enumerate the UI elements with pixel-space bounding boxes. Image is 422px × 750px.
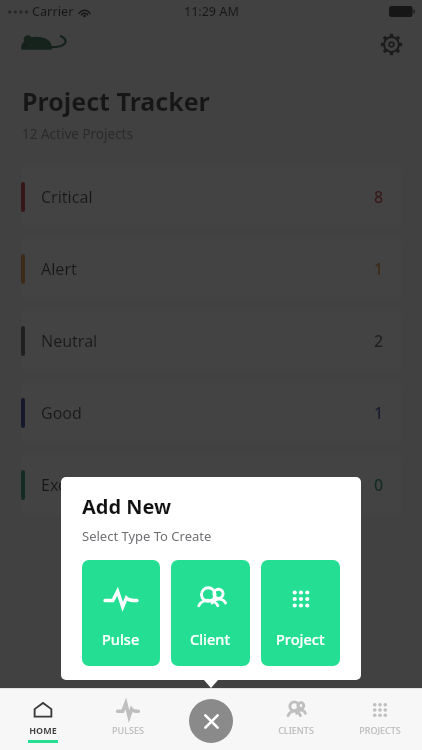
button[interactable]: PROJECTS <box>338 688 422 750</box>
button[interactable]: Alert <box>21 237 401 300</box>
button[interactable]: CLIENTS <box>254 688 338 750</box>
staticText: Project Tracker <box>22 84 210 118</box>
staticText: Critical <box>41 186 93 208</box>
staticText: 0 <box>374 474 384 496</box>
staticText: PROJECTS <box>359 724 401 736</box>
staticText: 2 <box>374 330 384 352</box>
button[interactable]: Good <box>21 381 401 444</box>
button[interactable]: App logo <box>18 31 76 57</box>
button[interactable]: Pulse <box>82 560 160 666</box>
staticText: 12 Active Projects <box>22 125 133 143</box>
staticText: Carrier <box>32 3 74 20</box>
staticText: 11:29 AM <box>184 3 239 20</box>
button[interactable]: Settings <box>374 27 408 61</box>
button[interactable]: HOME <box>0 688 85 750</box>
staticText: Alert <box>41 258 77 280</box>
button[interactable]: PULSES <box>85 688 170 750</box>
button[interactable]: Project <box>261 560 340 666</box>
staticText: CLIENTS <box>278 724 314 736</box>
button[interactable]: Neutral <box>21 309 401 372</box>
staticText: Select Type To Create <box>82 527 212 545</box>
staticText: 1 <box>374 258 384 280</box>
staticText: Project <box>276 629 325 649</box>
staticText: Good <box>41 402 82 424</box>
staticText: PULSES <box>112 724 144 736</box>
staticText: Pulse <box>102 629 140 649</box>
staticText: 8 <box>374 186 384 208</box>
staticText: Add New <box>82 493 172 520</box>
staticText: Client <box>190 629 231 649</box>
staticText: 1 <box>374 402 384 424</box>
button[interactable]: Excellent <box>21 453 401 516</box>
staticText: HOME <box>29 724 57 736</box>
button[interactable]: Critical <box>21 165 401 228</box>
staticText: Excellent <box>41 474 108 496</box>
button[interactable]: Close add menu <box>189 699 233 743</box>
staticText: Neutral <box>41 330 98 352</box>
button[interactable]: Client <box>171 560 250 666</box>
